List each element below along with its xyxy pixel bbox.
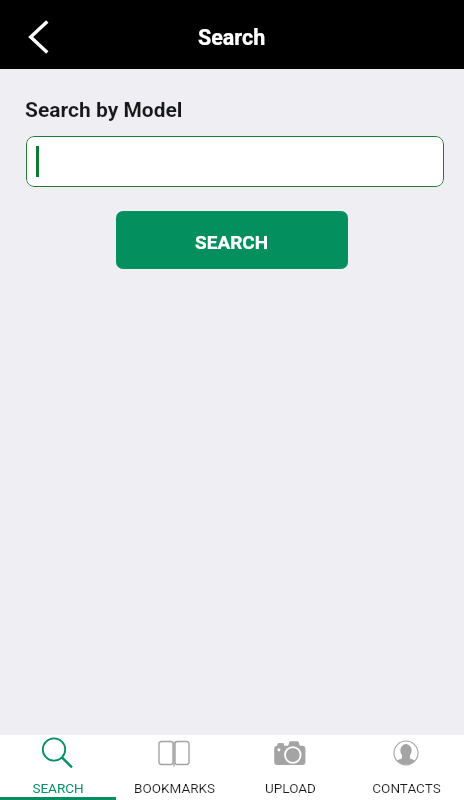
button[interactable]: BOOKMARKS bbox=[116, 735, 232, 800]
button[interactable] bbox=[26, 136, 444, 187]
staticText: BOOKMARKS bbox=[134, 780, 215, 796]
staticText: SEARCH bbox=[32, 780, 84, 796]
staticText: SEARCH bbox=[195, 231, 269, 253]
button[interactable]: CONTACTS bbox=[348, 735, 464, 800]
staticText: Search by Model bbox=[25, 98, 183, 123]
button[interactable]: SEARCH bbox=[0, 735, 116, 800]
button[interactable]: SEARCH bbox=[116, 211, 348, 269]
staticText: UPLOAD bbox=[265, 780, 316, 796]
button[interactable]: UPLOAD bbox=[232, 735, 348, 800]
staticText: CONTACTS bbox=[372, 780, 441, 796]
button[interactable]: Back bbox=[15, 13, 63, 61]
staticText: Search bbox=[198, 25, 266, 50]
